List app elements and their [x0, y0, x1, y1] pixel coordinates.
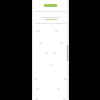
- button[interactable]: Brand banner: [32, 2, 69, 8]
- button[interactable]: [32, 16, 69, 21]
